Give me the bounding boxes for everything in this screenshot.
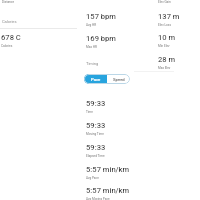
staticText: Distance: [2, 0, 15, 4]
button[interactable]: Pace: [84, 74, 107, 84]
staticText: Avg Pace: [86, 176, 99, 180]
button[interactable]: 28 m: [158, 55, 176, 70]
button[interactable]: 5.9 km: [2, 0, 26, 4]
staticText: 157 bpm: [86, 12, 116, 21]
staticText: 169 bpm: [86, 34, 116, 43]
staticText: Elapsed Time: [86, 154, 105, 158]
staticText: Timing: [86, 61, 99, 66]
button[interactable]: 157 bpm: [86, 12, 116, 27]
staticText: Calories: [2, 19, 17, 24]
staticText: Moving Time: [86, 132, 104, 136]
staticText: 28 m: [158, 55, 176, 64]
button[interactable]: 59:33: [86, 99, 106, 114]
staticText: Elev Gain: [158, 0, 171, 4]
staticText: Avg HR: [86, 23, 97, 27]
button[interactable]: 678 C: [1, 33, 21, 48]
button[interactable]: 169 bpm: [86, 34, 116, 49]
button[interactable]: Speed: [107, 74, 130, 84]
staticText: 10 m: [158, 33, 176, 42]
staticText: Speed: [113, 77, 125, 82]
staticText: Max Elev: [158, 66, 171, 70]
staticText: 5:57 min/km: [86, 165, 130, 174]
staticText: 59:33: [86, 121, 106, 130]
staticText: Time: [86, 110, 93, 114]
button[interactable]: 5:57 min/km: [86, 186, 130, 200]
staticText: Pace: [91, 77, 101, 82]
staticText: 137 m: [158, 12, 180, 21]
staticText: Calories: [1, 44, 13, 48]
staticText: Elev Loss: [158, 23, 172, 27]
button[interactable]: 137 m: [158, 12, 180, 27]
button[interactable]: 243 m: [158, 0, 180, 4]
button[interactable]: 10 m: [158, 33, 176, 48]
staticText: 678 C: [1, 33, 21, 42]
staticText: Max HR: [86, 45, 97, 49]
button[interactable]: 5:57 min/km: [86, 165, 130, 180]
button[interactable]: 59:33: [86, 143, 106, 158]
staticText: 59:33: [86, 99, 106, 108]
staticText: 59:33: [86, 143, 106, 152]
staticText: 5:57 min/km: [86, 186, 130, 195]
staticText: Avg Moving Pace: [86, 197, 110, 200]
staticText: Min Elev: [158, 44, 170, 48]
button[interactable]: 59:33: [86, 121, 106, 136]
